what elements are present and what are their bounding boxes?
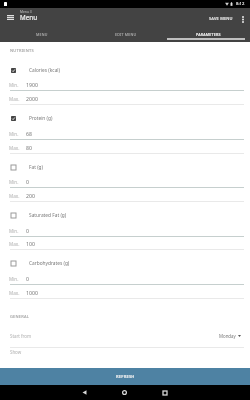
staticText: Min. (9, 82, 19, 88)
button[interactable]: More options (236, 12, 250, 26)
staticText: Start from (10, 333, 31, 339)
button[interactable]: Max. (0, 238, 250, 250)
staticText: Menu (20, 13, 38, 22)
staticText: 200 (26, 192, 35, 199)
button[interactable]: REFRESH (0, 368, 250, 385)
staticText: 1900 (26, 81, 38, 88)
staticText: Min. (9, 276, 19, 282)
staticText: 8:12 (236, 1, 245, 7)
staticText: 68 (26, 130, 32, 137)
staticText: Monday (219, 333, 236, 339)
button[interactable]: Min. (0, 79, 250, 91)
staticText: Min. (9, 179, 19, 185)
button[interactable]: Min. (0, 128, 250, 140)
button[interactable]: Min. (0, 176, 250, 188)
button[interactable]: Max. (0, 190, 250, 202)
staticText: 0 (26, 275, 29, 282)
staticText: Max. (9, 96, 20, 102)
staticText: Fat (g) (29, 164, 43, 171)
staticText: SAVE MENU (209, 16, 233, 21)
button[interactable]: Carbohydrates (g) (0, 258, 250, 268)
button[interactable]: Min. (0, 225, 250, 237)
staticText: 0 (26, 227, 29, 234)
staticText: Saturated Fat (g) (29, 212, 67, 219)
staticText: MENU (36, 32, 48, 37)
button[interactable]: Home (117, 385, 132, 400)
staticText: Max. (9, 290, 20, 296)
staticText: Max. (9, 145, 20, 151)
button[interactable]: Max. (0, 93, 250, 105)
button[interactable]: Fat (g) (0, 162, 250, 172)
staticText: GENERAL (10, 314, 30, 319)
button[interactable]: Protein (g) (0, 113, 250, 123)
staticText: 80 (26, 144, 32, 151)
button[interactable]: Recent apps (157, 385, 172, 400)
staticText: EDIT MENU (115, 32, 137, 37)
button[interactable]: Open navigation menu (2, 9, 18, 25)
staticText: Max. (9, 193, 20, 199)
button[interactable]: EDIT MENU (84, 28, 167, 42)
staticText: 1000 (26, 289, 38, 296)
staticText: 2000 (26, 95, 38, 102)
button[interactable]: Back (77, 385, 92, 400)
button[interactable]: Start from (0, 330, 250, 342)
button[interactable]: Max. (0, 287, 250, 299)
staticText: PARAMETERS (196, 32, 221, 37)
staticText: Min. (9, 228, 19, 234)
staticText: Carbohydrates (g) (29, 260, 70, 267)
staticText: Show (10, 349, 22, 355)
staticText: REFRESH (116, 374, 135, 380)
staticText: Min. (9, 131, 19, 137)
staticText: Max. (9, 241, 20, 247)
button[interactable]: Calories (kcal) (0, 65, 250, 75)
button[interactable]: PARAMETERS (167, 28, 250, 42)
staticText: Calories (kcal) (29, 67, 61, 74)
staticText: 0 (26, 178, 29, 185)
button[interactable]: Min. (0, 273, 250, 285)
button[interactable]: MENU (0, 28, 84, 42)
button[interactable]: SAVE MENU (206, 11, 236, 26)
staticText: Protein (g) (29, 115, 53, 122)
staticText: Menu 3 (20, 9, 32, 13)
button[interactable]: Saturated Fat (g) (0, 210, 250, 220)
button[interactable]: Max. (0, 142, 250, 154)
staticText: NUTRIENTS (10, 48, 34, 53)
staticText: 100 (26, 240, 35, 247)
